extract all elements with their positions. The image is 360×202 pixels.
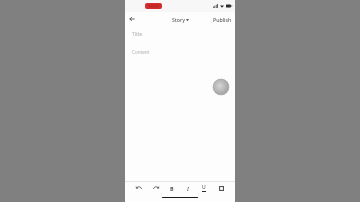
button[interactable]: Content — [132, 49, 228, 181]
button[interactable]: Italic — [182, 182, 194, 194]
staticText: Content — [132, 49, 150, 55]
button[interactable]: Undo — [133, 182, 145, 194]
staticText: U — [202, 184, 206, 191]
button[interactable]: Publish — [210, 14, 235, 25]
button[interactable]: Redo — [150, 182, 162, 194]
button[interactable]: Title — [132, 31, 228, 38]
staticText: I — [187, 185, 189, 192]
button[interactable]: More formatting — [215, 182, 227, 194]
staticText: Story — [172, 16, 185, 23]
staticText: Publish — [213, 16, 232, 23]
button[interactable]: Story — [172, 16, 189, 23]
button[interactable]: Bold — [166, 182, 178, 194]
staticText: Title — [132, 31, 142, 38]
button[interactable]: Back — [127, 14, 137, 24]
staticText: B — [170, 185, 174, 192]
button[interactable]: Underline — [198, 182, 210, 194]
